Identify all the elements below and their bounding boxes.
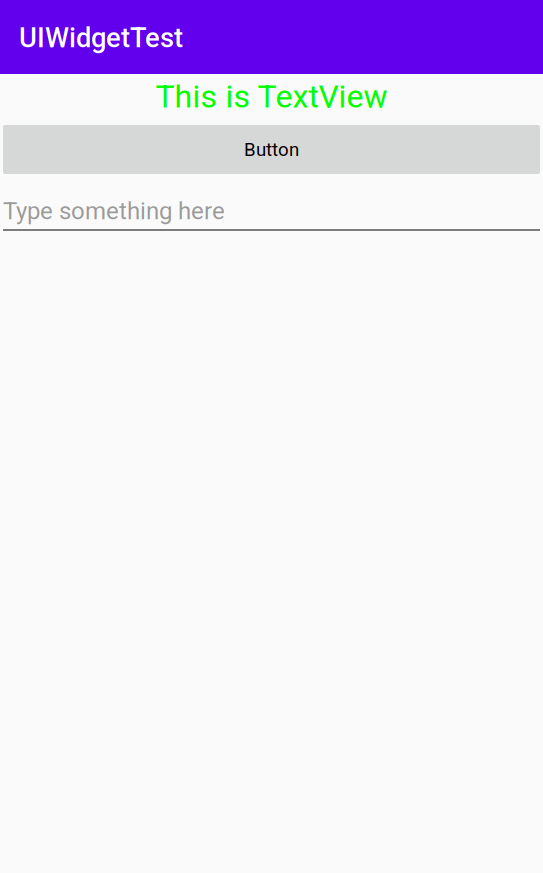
staticText: UIWidgetTest [19,22,183,54]
button[interactable]: Button [3,125,540,174]
staticText: Type something here [3,197,225,225]
staticText: This is TextView [155,78,387,115]
button[interactable]: Type something here [3,177,540,231]
staticText: Button [244,139,299,160]
